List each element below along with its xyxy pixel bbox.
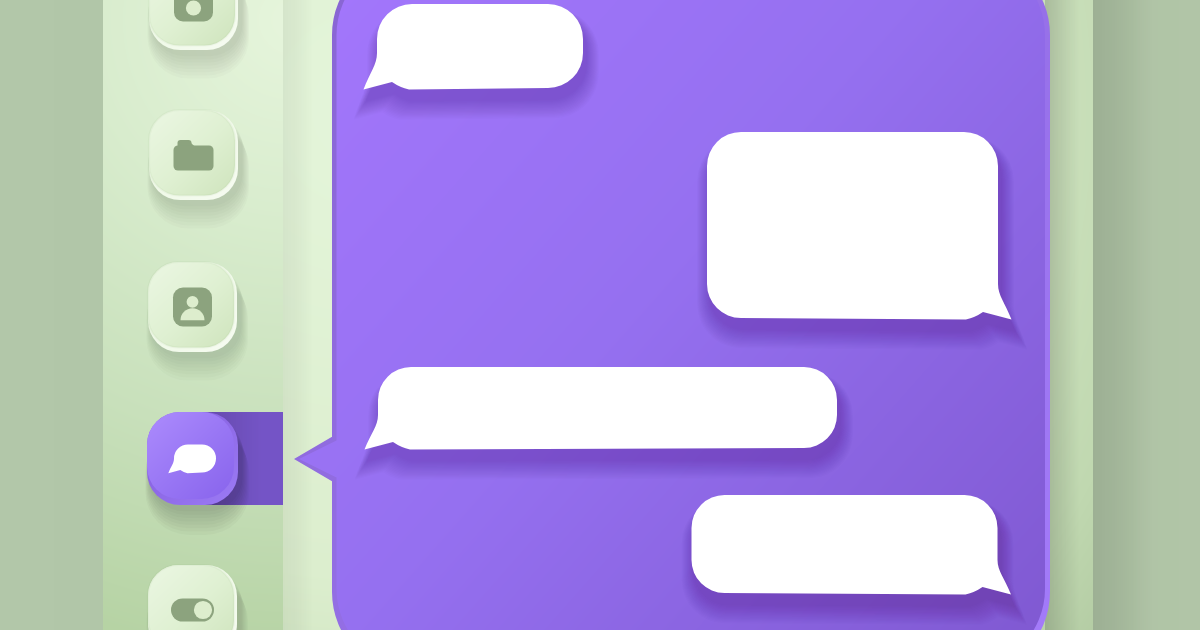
- button[interactable]: Contacts: [148, 262, 237, 352]
- button[interactable]: Settings: [148, 565, 237, 630]
- button[interactable]: Files: [148, 110, 237, 200]
- button[interactable]: Camera: [148, 0, 237, 50]
- button[interactable]: Messages: [147, 412, 283, 505]
